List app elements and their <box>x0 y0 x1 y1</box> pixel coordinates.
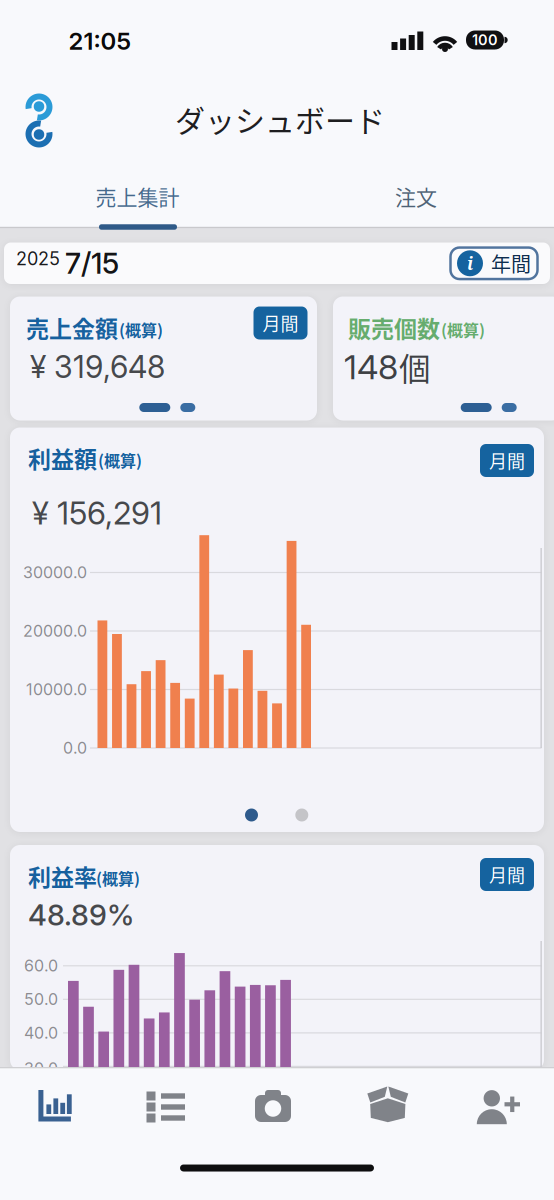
staticText: 月間 <box>489 447 525 474</box>
staticText: 7/15 <box>65 246 119 281</box>
button[interactable]: 注文一覧 <box>111 1065 222 1155</box>
staticText: 売上金額 <box>26 311 118 344</box>
staticText: (概算) <box>119 318 163 341</box>
button[interactable]: 売上集計 <box>47 174 227 218</box>
button[interactable]: 注文 <box>326 174 506 218</box>
staticText: (概算) <box>96 866 140 890</box>
staticText: ¥ 319,648 <box>30 348 165 385</box>
staticText: 0.0 <box>63 738 87 758</box>
staticText: ¥ 156,291 <box>32 494 162 532</box>
staticText: (概算) <box>98 448 142 472</box>
staticText: 48.89% <box>28 897 134 933</box>
staticText: 売上集計 <box>95 181 179 211</box>
button[interactable]: 取引先を追加 <box>443 1065 554 1155</box>
staticText: 30000.0 <box>23 563 87 582</box>
staticText: 利益額 <box>28 441 97 475</box>
staticText: i <box>467 251 473 275</box>
staticText: 月間 <box>489 861 525 888</box>
staticText: 30.0 <box>24 1059 58 1078</box>
button[interactable]: 在庫 <box>332 1065 443 1155</box>
staticText: 利益率 <box>28 859 97 893</box>
button[interactable]: 売上集計 <box>0 1065 111 1155</box>
staticText: 注文 <box>395 181 437 211</box>
button[interactable]: 日付を選択 <box>16 242 134 284</box>
staticText: 60.0 <box>24 956 58 975</box>
staticText: 販売個数 <box>348 311 440 344</box>
staticText: ダッシュボード <box>175 97 385 141</box>
button[interactable]: 月間 <box>480 444 534 477</box>
button[interactable]: 月間 <box>253 306 307 339</box>
staticText: 40.0 <box>24 1023 58 1043</box>
button[interactable]: 月間 <box>480 858 534 891</box>
staticText: 148 <box>344 346 398 387</box>
staticText: 年間 <box>491 249 531 278</box>
staticText: 個 <box>399 344 431 390</box>
staticText: 10000.0 <box>26 680 87 699</box>
staticText: 21:05 <box>68 26 131 55</box>
staticText: 50.0 <box>24 990 58 1009</box>
button[interactable]: i <box>449 246 539 280</box>
staticText: 100 <box>472 31 498 49</box>
staticText: 2025 <box>16 248 60 270</box>
staticText: 月間 <box>262 310 298 336</box>
staticText: (概算) <box>441 318 485 341</box>
button[interactable]: カメラ <box>222 1065 332 1155</box>
staticText: 20000.0 <box>23 621 87 641</box>
